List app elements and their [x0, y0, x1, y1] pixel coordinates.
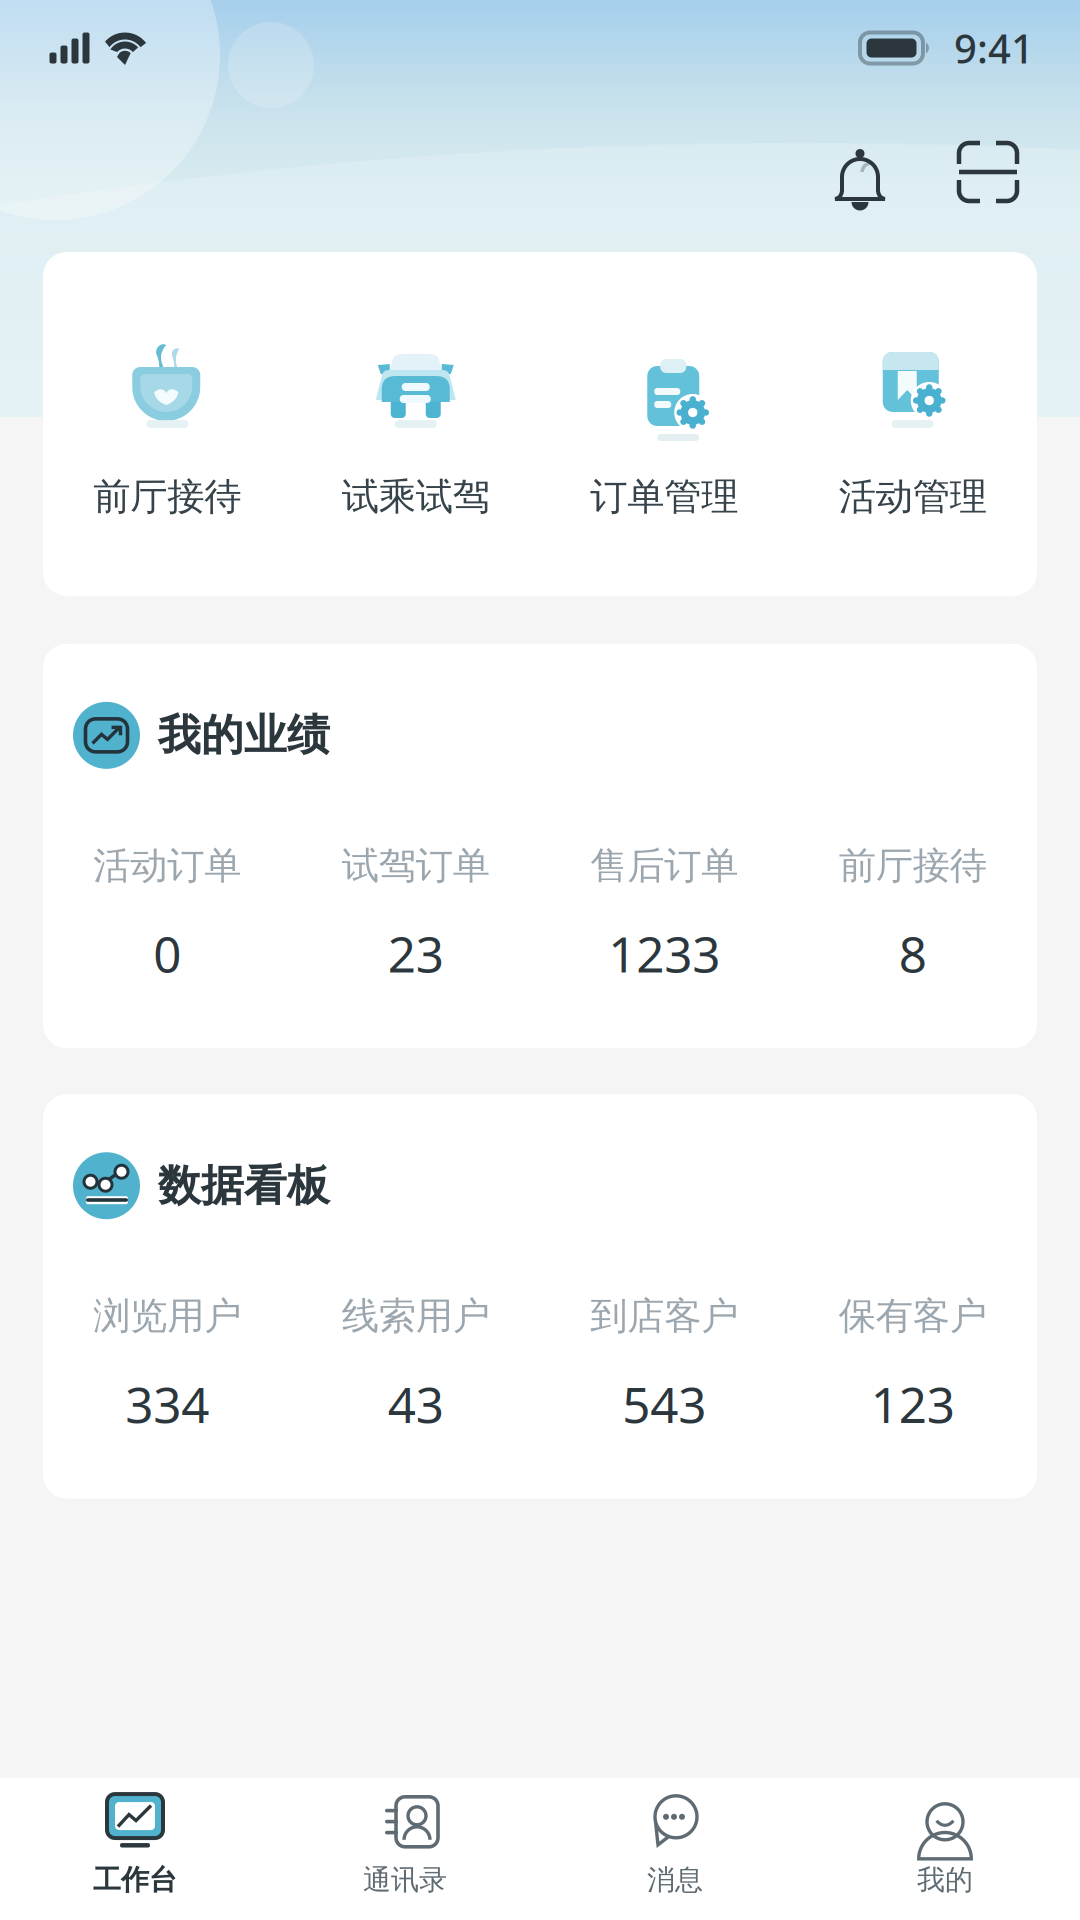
staticText: 售后订单 [590, 843, 738, 889]
staticText: 活动订单 [93, 843, 241, 889]
staticText: 543 [622, 1371, 706, 1437]
button[interactable]: Notifications [810, 122, 910, 222]
staticText: 订单管理 [590, 474, 738, 520]
button[interactable]: Scan [938, 122, 1038, 222]
staticText: 保有客户 [839, 1293, 987, 1339]
staticText: 0 [153, 921, 181, 986]
staticText: 消息 [647, 1863, 703, 1897]
staticText: 线索用户 [342, 1293, 490, 1339]
staticText: 前厅接待 [93, 474, 241, 520]
staticText: 工作台 [93, 1863, 177, 1897]
button[interactable]: 订单管理 [540, 340, 788, 520]
staticText: 9:41 [954, 21, 1034, 74]
staticText: 1233 [608, 921, 720, 986]
button[interactable]: 工作台 [0, 1775, 270, 1920]
staticText: 活动管理 [839, 474, 987, 520]
staticText: 前厅接待 [839, 843, 987, 889]
staticText: 123 [871, 1371, 955, 1437]
button[interactable]: 通讯录 [270, 1775, 540, 1920]
button[interactable]: 试乘试驾 [291, 340, 540, 520]
staticText: 试驾订单 [342, 843, 490, 889]
staticText: 23 [388, 921, 444, 986]
staticText: 334 [125, 1371, 209, 1437]
button[interactable]: 我的 [810, 1775, 1080, 1920]
staticText: 我的 [917, 1863, 973, 1897]
staticText: 数据看板 [158, 1159, 330, 1212]
button[interactable]: 活动管理 [788, 340, 1037, 520]
button[interactable]: 消息 [540, 1775, 810, 1920]
staticText: 43 [388, 1371, 444, 1437]
staticText: 到店客户 [590, 1293, 738, 1339]
staticText: 试乘试驾 [342, 474, 490, 520]
staticText: 我的业绩 [158, 709, 330, 762]
button[interactable]: 前厅接待 [43, 340, 291, 520]
staticText: 通讯录 [363, 1863, 447, 1897]
staticText: 8 [899, 921, 927, 986]
staticText: 浏览用户 [93, 1293, 241, 1339]
